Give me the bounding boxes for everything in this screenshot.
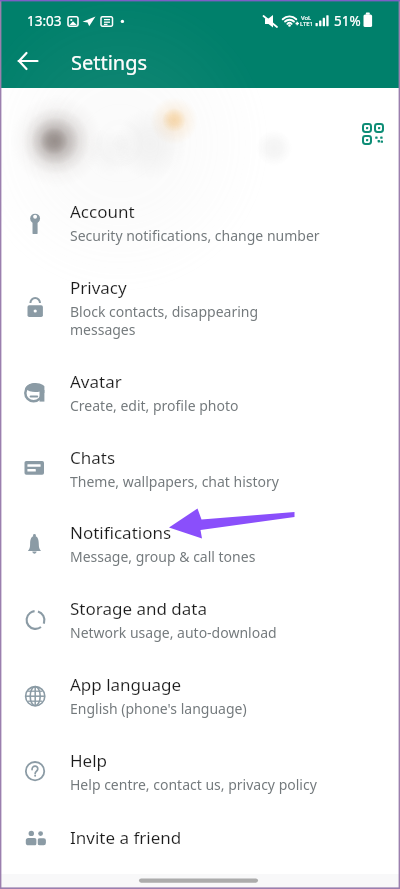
staticText: Privacy bbox=[70, 276, 127, 299]
staticText: Help bbox=[70, 749, 108, 772]
staticText: LTE1 bbox=[300, 20, 314, 28]
staticText: Avatar bbox=[70, 370, 122, 393]
button[interactable]: Avatar bbox=[0, 354, 400, 430]
staticText: Network usage, auto-download bbox=[70, 623, 277, 642]
button[interactable]: Back bbox=[11, 44, 45, 78]
staticText: Theme, wallpapers, chat history bbox=[70, 472, 279, 491]
staticText: Storage and data bbox=[70, 597, 208, 620]
button[interactable]: Help bbox=[0, 733, 400, 809]
staticText: Notifications bbox=[70, 521, 172, 544]
staticText: 13:03 bbox=[27, 12, 62, 30]
button[interactable]: QR code bbox=[0, 88, 400, 182]
staticText: VoL bbox=[301, 14, 312, 22]
button[interactable]: Account bbox=[0, 184, 400, 260]
staticText: 51% bbox=[334, 12, 361, 30]
staticText: Invite a friend bbox=[70, 826, 182, 849]
staticText: Help centre, contact us, privacy policy bbox=[70, 775, 317, 794]
staticText: Block contacts, disappearing messages bbox=[70, 302, 259, 339]
button[interactable]: Invite a friend bbox=[0, 809, 400, 865]
button[interactable]: Privacy bbox=[0, 260, 400, 354]
staticText: Create, edit, profile photo bbox=[70, 396, 239, 415]
button[interactable]: Chats bbox=[0, 430, 400, 506]
staticText: Security notifications, change number bbox=[70, 226, 320, 245]
staticText: App language bbox=[70, 673, 182, 696]
button[interactable]: App language bbox=[0, 657, 400, 733]
button[interactable]: Storage and data bbox=[0, 581, 400, 657]
staticText: Settings bbox=[71, 49, 148, 76]
staticText: Message, group & call tones bbox=[70, 547, 256, 566]
button[interactable]: Notifications bbox=[0, 505, 400, 581]
staticText: Account bbox=[70, 200, 135, 223]
staticText: Chats bbox=[70, 446, 116, 469]
staticText: English (phone's language) bbox=[70, 699, 247, 718]
button[interactable]: QR code bbox=[363, 124, 383, 144]
